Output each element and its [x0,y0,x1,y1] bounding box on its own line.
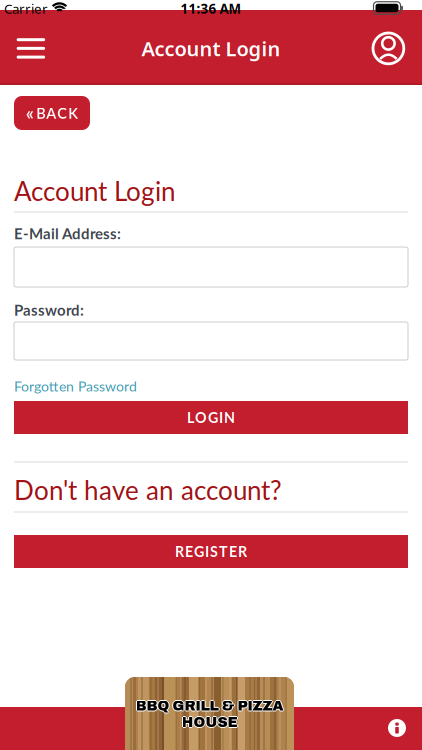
staticText: BBQ GRILL & PIZZA [135,699,283,714]
staticText: Account Login [141,35,280,62]
staticText: HOUSE [182,714,238,730]
staticText: 11:36 AM [180,0,241,17]
staticText: BBQ GRILL & PIZZA [134,698,282,713]
staticText: B A C K [36,104,78,122]
button[interactable]: Info [388,719,406,737]
staticText: Account Login [14,175,176,207]
staticText: BBQ GRILL & PIZZA [136,698,284,713]
staticText: E-Mail Address: [14,224,121,242]
button[interactable]: Account [371,31,405,65]
staticText: HOUSE [181,713,237,729]
staticText: BBQ GRILL & PIZZA [135,698,283,713]
staticText: HOUSE [180,714,236,730]
staticText: L O G I N [187,409,235,426]
staticText: Carrier [4,0,48,17]
button[interactable]: Menu [11,32,51,64]
button[interactable]: R E G I S T E R [14,535,408,568]
staticText: HOUSE [181,715,237,731]
staticText: BBQ GRILL & PIZZA [135,697,283,712]
staticText: Password: [14,301,84,319]
button[interactable]: Forgotten Password [14,378,137,394]
staticText: R E G I S T E R [175,543,247,560]
button[interactable]: « [14,96,90,130]
staticText: Forgotten Password [14,378,137,394]
staticText: HOUSE [181,714,237,730]
staticText: « [26,102,34,124]
staticText: Don't have an account? [14,474,282,506]
button[interactable]: L O G I N [14,401,408,434]
